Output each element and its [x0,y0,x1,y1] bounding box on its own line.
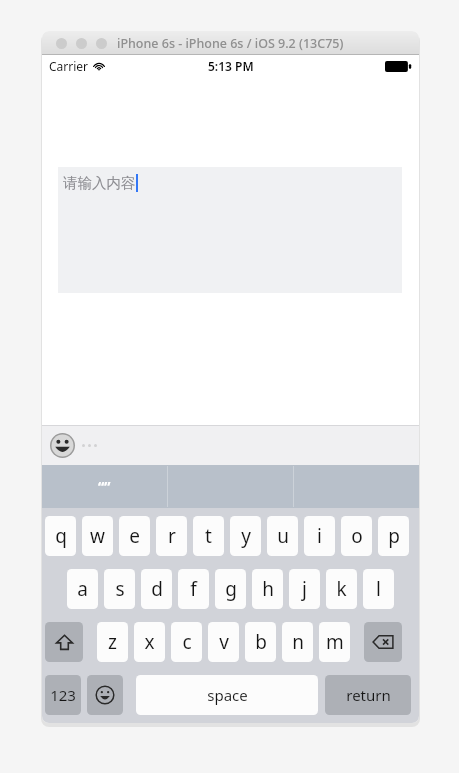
button[interactable]: y [230,516,261,556]
button[interactable]: h [252,569,283,609]
staticText: h [262,576,274,602]
staticText: b [255,629,267,655]
staticText: i [317,523,322,549]
button[interactable]: “” [42,465,167,508]
button[interactable]: f [178,569,209,609]
button[interactable]: r [156,516,187,556]
staticText: m [326,629,344,655]
staticText: “” [98,477,111,496]
staticText: s [115,576,125,602]
button[interactable]: n [282,622,313,662]
button[interactable]: d [141,569,172,609]
staticText: d [151,576,163,602]
staticText: c [182,629,192,655]
button[interactable]: 123 [45,675,81,715]
button[interactable]: space [136,675,318,715]
button[interactable]: 请输入内容 [58,167,402,293]
staticText: w [90,523,105,549]
staticText: v [219,629,229,655]
staticText: 5:13 PM [208,58,254,74]
button[interactable]: m [319,622,350,662]
staticText: e [129,523,140,549]
button[interactable]: z [97,622,128,662]
button[interactable]: l [363,569,394,609]
staticText: f [190,576,197,602]
staticText: j [302,576,307,602]
button[interactable]: v [208,622,239,662]
staticText: r [168,523,176,549]
button[interactable]: x [134,622,165,662]
button[interactable]: a [67,569,98,609]
staticText: space [207,685,248,705]
staticText: q [55,523,67,549]
staticText: x [144,629,155,655]
staticText: t [205,523,212,549]
staticText: 123 [50,685,76,705]
button[interactable]: c [171,622,202,662]
button[interactable]: o [341,516,372,556]
staticText: 请输入内容 [63,174,136,192]
staticText: iPhone 6s - iPhone 6s / iOS 9.2 (13C75) [117,35,344,52]
staticText: a [77,576,88,602]
button[interactable]: Window button [56,38,67,49]
button[interactable]: Emoji keyboard [87,675,123,715]
staticText: g [225,576,237,602]
button[interactable]: Window button [76,38,87,49]
staticText: o [351,523,363,549]
button[interactable]: Shift [45,622,83,662]
staticText: n [292,629,304,655]
button[interactable]: e [119,516,150,556]
button[interactable]: Window button [96,38,107,49]
button[interactable]: w [82,516,113,556]
button[interactable]: i [304,516,335,556]
button[interactable]: t [193,516,224,556]
staticText: k [336,576,347,602]
staticText: u [277,523,289,549]
staticText: l [376,576,381,602]
button[interactable]: u [267,516,298,556]
staticText: z [108,629,117,655]
staticText: y [241,523,251,549]
staticText: return [346,685,391,705]
button[interactable]: b [245,622,276,662]
button[interactable]: j [289,569,320,609]
staticText: Carrier [49,58,89,74]
button[interactable]: g [215,569,246,609]
button[interactable]: q [45,516,76,556]
button[interactable]: Backspace [364,622,402,662]
button[interactable]: s [104,569,135,609]
button[interactable]: p [378,516,409,556]
button[interactable]: return [325,675,411,715]
button[interactable]: Emoji [49,432,76,459]
button[interactable]: k [326,569,357,609]
staticText: p [388,523,400,549]
